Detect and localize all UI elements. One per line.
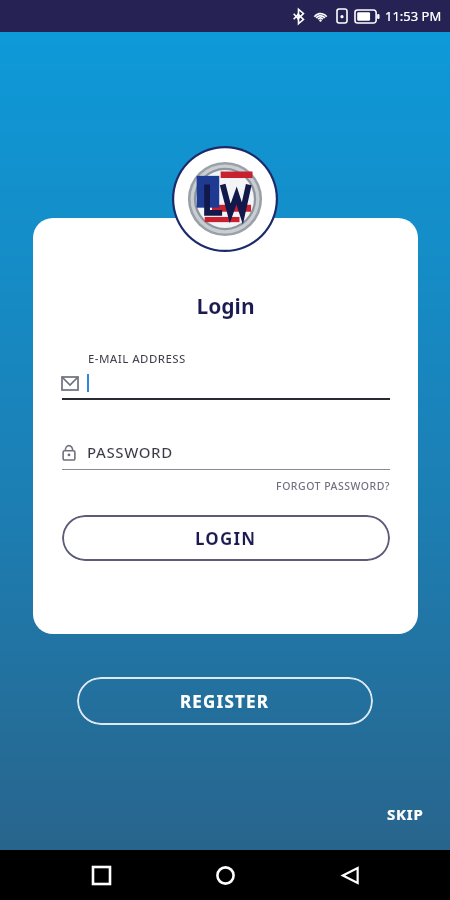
button[interactable]: FORGOT PASSWORD? [62, 479, 390, 493]
button[interactable]: Recent apps [77, 851, 125, 899]
button[interactable]: SKIP [379, 798, 432, 830]
staticText: REGISTER [180, 690, 270, 713]
staticText: SKIP [387, 804, 424, 824]
button[interactable]: LOGIN [62, 515, 390, 561]
staticText: LOGIN [195, 527, 257, 550]
staticText: E-MAIL ADDRESS [88, 351, 186, 367]
button[interactable]: REGISTER [77, 677, 373, 725]
staticText: PASSWORD [87, 442, 173, 462]
staticText: Login [33, 292, 418, 321]
staticText: 11:53 PM [385, 7, 442, 25]
button[interactable]: Home [201, 851, 249, 899]
button[interactable]: Back [326, 851, 374, 899]
